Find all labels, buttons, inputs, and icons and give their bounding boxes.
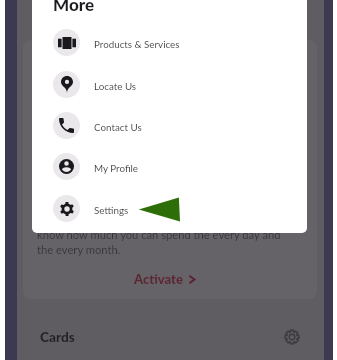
button[interactable]: Activate [134, 271, 196, 287]
staticText: Activate [134, 271, 183, 287]
button[interactable]: Locate Us [32, 64, 307, 105]
staticText: Locate Us [94, 80, 137, 92]
staticText: More [53, 0, 95, 14]
button[interactable]: Card settings [284, 329, 300, 345]
staticText: know how much you can spend the every da… [37, 228, 281, 241]
staticText: Products & Services [94, 38, 180, 50]
staticText: Contact Us [94, 121, 142, 133]
button[interactable]: Products and Services [32, 22, 307, 63]
button[interactable]: Settings [32, 188, 307, 229]
staticText: Cards [40, 329, 75, 345]
button[interactable]: Contact Us [32, 105, 307, 146]
staticText: the every month. [37, 243, 121, 256]
button[interactable]: My Profile [32, 146, 307, 187]
staticText: My Profile [94, 162, 138, 174]
staticText: Settings [94, 204, 129, 216]
